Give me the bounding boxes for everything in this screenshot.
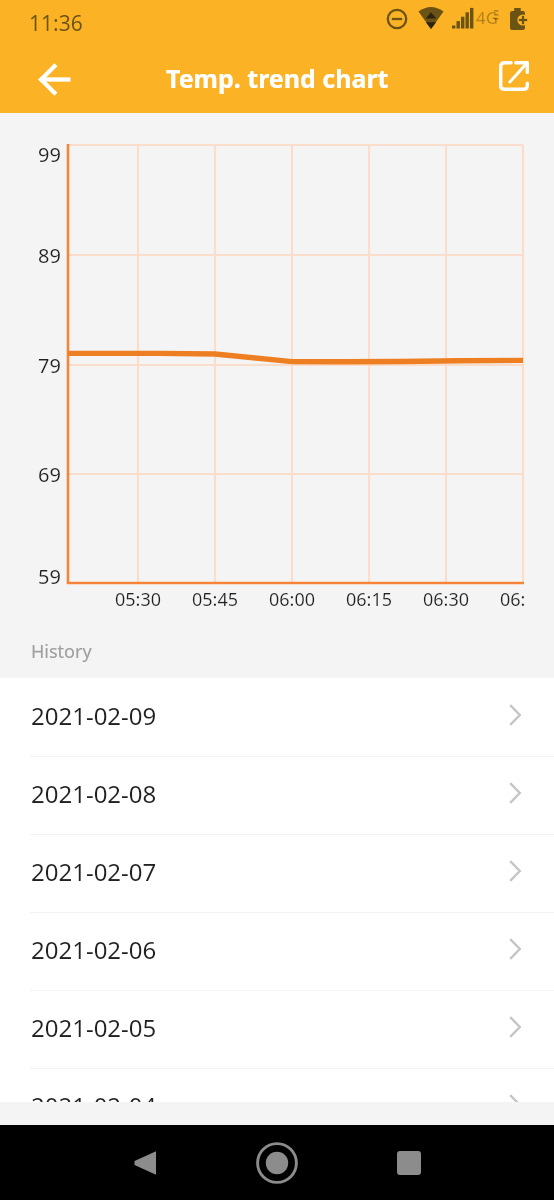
staticText: Temp. trend chart xyxy=(166,61,389,95)
staticText: 69 xyxy=(38,461,61,488)
button[interactable]: 2021-02-07 xyxy=(0,834,554,912)
staticText: 2021-02-06 xyxy=(31,933,157,966)
button[interactable]: Recents xyxy=(374,1128,444,1198)
staticText: 06:30 xyxy=(423,587,470,609)
button[interactable]: Back xyxy=(24,51,86,107)
staticText: 2021-02-08 xyxy=(31,777,157,810)
staticText: 79 xyxy=(38,352,61,379)
button[interactable]: 2021-02-09 xyxy=(0,678,554,756)
button[interactable]: 2021-02-05 xyxy=(0,990,554,1068)
staticText: 05:30 xyxy=(115,587,162,609)
staticText: 59 xyxy=(38,563,61,590)
button[interactable]: 2021-02-04 xyxy=(0,1068,554,1146)
staticText: 05:45 xyxy=(192,587,239,609)
staticText: 06:45 xyxy=(500,587,525,609)
staticText: 06:15 xyxy=(346,587,393,609)
staticText: History xyxy=(31,639,92,664)
staticText: 4G xyxy=(476,6,499,29)
staticText: 2021-02-05 xyxy=(31,1011,157,1044)
button[interactable]: 2021-02-06 xyxy=(0,912,554,990)
staticText: 2021-02-07 xyxy=(31,855,157,888)
staticText: 89 xyxy=(38,242,61,269)
button[interactable]: Back xyxy=(108,1128,178,1198)
staticText: 99 xyxy=(38,141,61,168)
staticText: 11:36 xyxy=(29,9,83,38)
button[interactable]: 2021-02-08 xyxy=(0,756,554,834)
button[interactable]: Home xyxy=(242,1128,312,1198)
staticText: 2021-02-04 xyxy=(31,1089,157,1122)
button[interactable]: Share xyxy=(486,51,542,107)
staticText: 2021-02-09 xyxy=(31,699,157,732)
staticText: 06:00 xyxy=(269,587,316,609)
